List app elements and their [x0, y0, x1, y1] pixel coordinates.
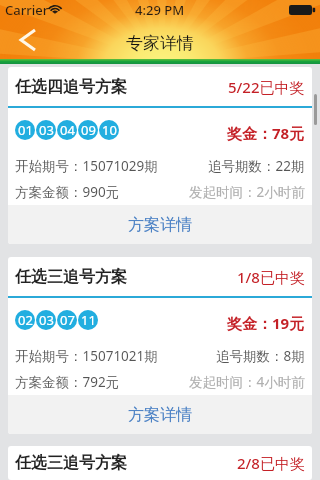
staticText: 专家详情 [126, 33, 194, 54]
staticText: 方案详情 [128, 405, 192, 425]
staticText: 02 [18, 311, 33, 329]
staticText: 方案详情 [128, 215, 192, 235]
staticText: 奖金：78元 [227, 123, 305, 143]
staticText: 4:29 PM [135, 1, 185, 19]
staticText: 开始期号：15071021期 [15, 347, 158, 365]
staticText: 开始期号：15071029期 [15, 157, 158, 175]
staticText: 03 [39, 311, 54, 329]
button[interactable]: 方案详情 [8, 395, 312, 434]
staticText: 发起时间：4小时前 [189, 373, 305, 391]
staticText: 04 [60, 121, 75, 139]
staticText: 03 [39, 121, 54, 139]
staticText: 任选三追号方案 [15, 453, 127, 473]
staticText: 发起时间：2小时前 [189, 183, 305, 201]
button[interactable]: Back [6, 20, 50, 60]
staticText: 2/8已中奖 [237, 453, 305, 473]
staticText: 09 [81, 121, 96, 139]
staticText: 追号期数：8期 [216, 347, 305, 365]
button[interactable]: 任选三追号方案 [8, 446, 312, 480]
button[interactable]: 方案详情 [8, 205, 312, 244]
staticText: 任选四追号方案 [15, 77, 127, 97]
staticText: 11 [81, 311, 96, 329]
staticText: 追号期数：22期 [208, 157, 305, 175]
button[interactable]: 任选三追号方案 [8, 257, 312, 434]
staticText: 10 [102, 121, 117, 139]
staticText: 方案金额：990元 [15, 183, 120, 201]
button[interactable]: 任选四追号方案 [8, 67, 312, 244]
staticText: 07 [60, 311, 75, 329]
staticText: 方案金额：792元 [15, 373, 120, 391]
staticText: 5/22已中奖 [228, 77, 305, 97]
staticText: 奖金：19元 [227, 313, 305, 333]
staticText: 任选三追号方案 [15, 267, 127, 287]
staticText: Carrier [5, 1, 49, 19]
staticText: 01 [18, 121, 33, 139]
staticText: 1/8已中奖 [237, 267, 305, 287]
